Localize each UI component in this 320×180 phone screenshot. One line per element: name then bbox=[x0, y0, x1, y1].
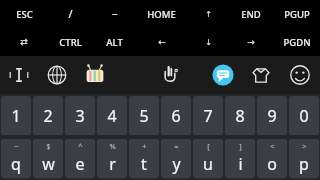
staticText: % bbox=[109, 141, 116, 151]
staticText: r bbox=[109, 153, 116, 175]
staticText: t bbox=[141, 153, 147, 175]
button[interactable]: Handwriting bbox=[150, 56, 190, 94]
staticText: 9 bbox=[267, 105, 277, 127]
staticText: HOME bbox=[147, 8, 176, 21]
staticText: 6 bbox=[171, 105, 181, 127]
staticText: i bbox=[238, 153, 243, 175]
staticText: 0 bbox=[299, 105, 309, 127]
button[interactable]: HOME bbox=[136, 0, 187, 28]
button[interactable]: + bbox=[129, 139, 159, 178]
button[interactable]: ~ bbox=[1, 139, 31, 178]
staticText: + bbox=[142, 141, 147, 151]
button[interactable]: → bbox=[229, 28, 273, 56]
button[interactable]: 7 bbox=[193, 96, 223, 135]
staticText: u bbox=[203, 153, 213, 175]
button[interactable]: ESC bbox=[0, 0, 48, 28]
button[interactable]: $ bbox=[33, 139, 63, 178]
staticText: ← bbox=[158, 37, 166, 47]
staticText: [ bbox=[207, 141, 210, 151]
staticText: ~ bbox=[14, 141, 19, 151]
button[interactable]: Messages bbox=[204, 56, 242, 94]
button[interactable]: 5 bbox=[129, 96, 159, 135]
button[interactable]: PGUP bbox=[273, 0, 320, 28]
staticText: q bbox=[11, 153, 21, 175]
staticText: END bbox=[241, 8, 261, 21]
staticText: 2 bbox=[43, 105, 53, 127]
staticText: = bbox=[174, 141, 179, 151]
button[interactable]: > bbox=[289, 139, 319, 178]
staticText: 3 bbox=[75, 105, 85, 127]
staticText: 1 bbox=[11, 105, 21, 127]
button[interactable]: 2 bbox=[33, 96, 63, 135]
button[interactable]: Stickers bbox=[76, 56, 114, 94]
staticText: 7 bbox=[203, 105, 213, 127]
button[interactable]: [ bbox=[193, 139, 223, 178]
button[interactable]: 9 bbox=[257, 96, 287, 135]
staticText: > bbox=[302, 141, 307, 151]
button[interactable]: ← bbox=[136, 28, 187, 56]
staticText: ⇄ bbox=[20, 37, 28, 47]
staticText: 4 bbox=[107, 105, 117, 127]
staticText: ] bbox=[239, 141, 242, 151]
button[interactable]: 0 bbox=[289, 96, 319, 135]
staticText: o bbox=[267, 153, 277, 175]
button[interactable]: Emoji bbox=[280, 56, 320, 94]
button[interactable]: ] bbox=[225, 139, 255, 178]
button[interactable]: < bbox=[257, 139, 287, 178]
button[interactable]: 6 bbox=[161, 96, 191, 135]
button[interactable]: 3 bbox=[65, 96, 95, 135]
button[interactable]: CTRL bbox=[48, 28, 92, 56]
staticText: < bbox=[270, 141, 275, 151]
staticText: PGUP bbox=[284, 8, 310, 21]
button[interactable]: ^ bbox=[65, 139, 95, 178]
button[interactable]: END bbox=[229, 0, 273, 28]
button[interactable]: ⇄ bbox=[0, 28, 48, 56]
staticText: CTRL bbox=[59, 36, 82, 49]
staticText: w bbox=[42, 153, 55, 175]
button[interactable]: ↓ bbox=[187, 28, 229, 56]
button[interactable]: = bbox=[161, 139, 191, 178]
button[interactable]: / bbox=[48, 0, 92, 28]
button[interactable]: ↑ bbox=[187, 0, 229, 28]
staticText: ↓ bbox=[205, 38, 212, 47]
button[interactable]: 1 bbox=[1, 96, 31, 135]
staticText: PGDN bbox=[283, 36, 311, 49]
staticText: / bbox=[68, 7, 73, 21]
button[interactable]: PGDN bbox=[273, 28, 320, 56]
staticText: $ bbox=[46, 141, 51, 151]
button[interactable]: − bbox=[92, 0, 136, 28]
button[interactable]: 8 bbox=[225, 96, 255, 135]
staticText: e bbox=[75, 153, 85, 175]
staticText: ALT bbox=[106, 36, 123, 49]
button[interactable]: Text cursor control bbox=[0, 56, 38, 94]
button[interactable]: Themes bbox=[242, 56, 280, 94]
staticText: p bbox=[299, 153, 309, 175]
button[interactable]: Language bbox=[38, 56, 76, 94]
staticText: ^ bbox=[78, 141, 83, 151]
staticText: − bbox=[111, 7, 118, 21]
button[interactable]: 4 bbox=[97, 96, 127, 135]
staticText: y bbox=[172, 153, 181, 175]
staticText: 8 bbox=[235, 105, 245, 127]
button[interactable]: ALT bbox=[92, 28, 136, 56]
button[interactable]: % bbox=[97, 139, 127, 178]
staticText: ESC bbox=[16, 8, 33, 21]
staticText: ↑ bbox=[205, 10, 212, 19]
staticText: → bbox=[247, 37, 255, 47]
staticText: 5 bbox=[139, 105, 149, 127]
